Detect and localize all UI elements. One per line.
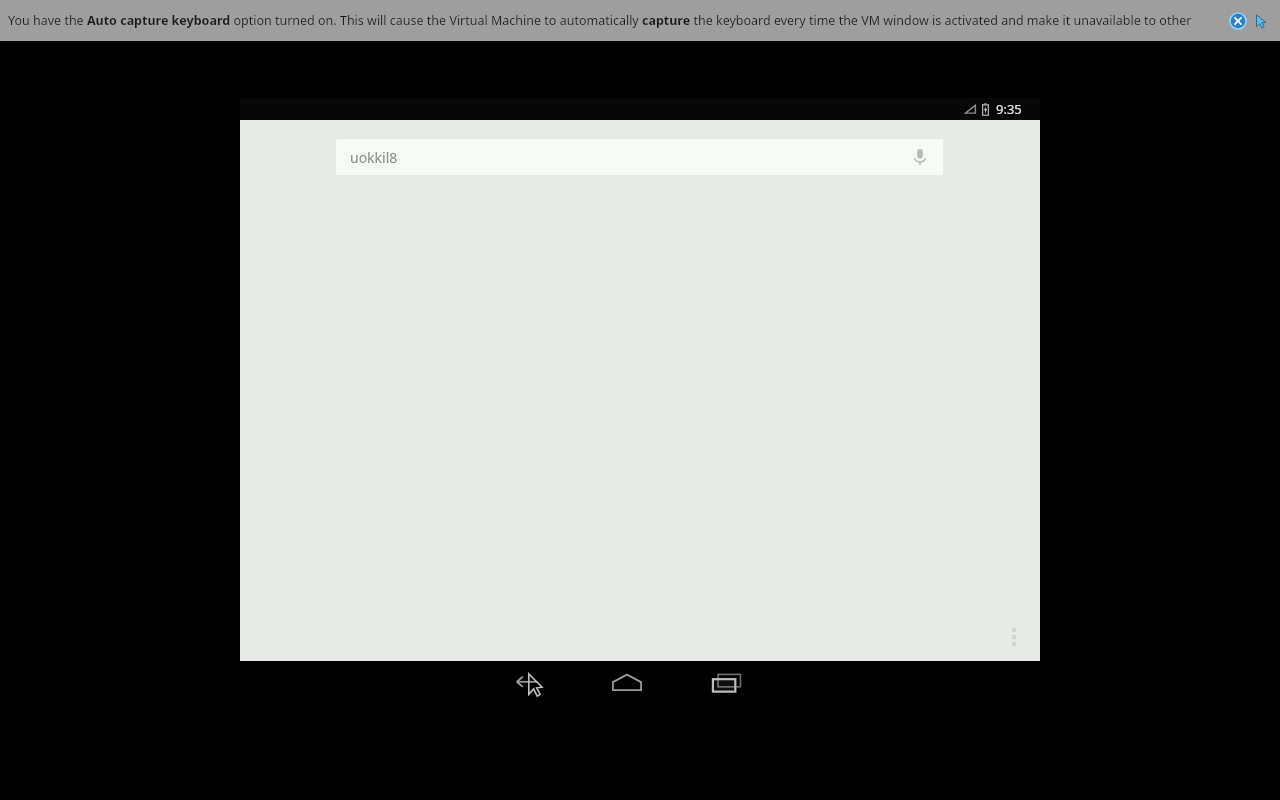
- staticText: uokkil8: [350, 148, 398, 167]
- button[interactable]: More options: [1000, 621, 1028, 653]
- staticText: 9:35: [996, 100, 1022, 118]
- button[interactable]: Close warning: [1230, 13, 1246, 29]
- button[interactable]: Voice search: [909, 146, 931, 168]
- button[interactable]: Recent apps: [690, 661, 764, 705]
- button[interactable]: Home: [590, 661, 664, 705]
- button[interactable]: uokkil8: [336, 139, 943, 175]
- button[interactable]: Mouse capture: [1252, 13, 1268, 29]
- staticText: You have the Auto capture keyboard optio…: [8, 12, 1192, 29]
- button[interactable]: Back: [490, 661, 564, 705]
